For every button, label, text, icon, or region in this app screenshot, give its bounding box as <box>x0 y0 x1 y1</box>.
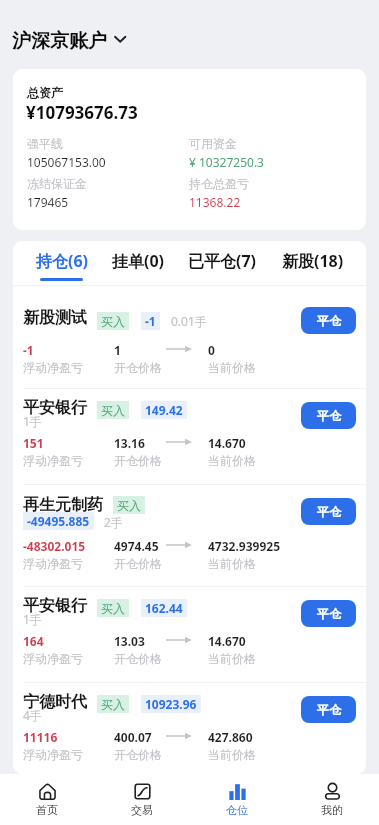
staticText: 宁德时代 <box>23 692 87 712</box>
staticText: 14.670 <box>208 435 246 451</box>
staticText: 4手 <box>23 707 42 723</box>
staticText: 买入 <box>117 498 141 513</box>
button[interactable]: 新股(18) <box>275 241 351 285</box>
button[interactable]: 新股测试 <box>13 286 366 389</box>
staticText: 1手 <box>23 413 42 429</box>
staticText: 开仓价格 <box>114 556 162 571</box>
staticText: 买入 <box>101 314 125 329</box>
staticText: 162.44 <box>145 600 183 616</box>
staticText: 平安银行 <box>23 398 87 418</box>
staticText: 当前价格 <box>208 360 256 375</box>
staticText: 买入 <box>101 601 125 616</box>
staticText: 浮动净盈亏 <box>23 747 83 762</box>
staticText: 11368.22 <box>189 194 241 210</box>
staticText: 1手 <box>23 611 42 627</box>
staticText: 首页 <box>36 803 58 817</box>
staticText: 平仓 <box>317 313 341 328</box>
button[interactable]: 首页 <box>0 774 94 825</box>
staticText: 1 <box>114 342 121 358</box>
staticText: 当前价格 <box>208 747 256 762</box>
staticText: 再生元制药 <box>23 495 103 515</box>
staticText: 当前价格 <box>208 651 256 666</box>
staticText: -1 <box>145 313 156 329</box>
button[interactable]: 平仓 <box>301 402 356 429</box>
staticText: 4974.45 <box>114 538 159 554</box>
staticText: ¥ 10327250.3 <box>189 154 264 170</box>
button[interactable]: 平仓 <box>301 600 356 627</box>
staticText: 151 <box>23 435 44 451</box>
staticText: 浮动净盈亏 <box>23 651 83 666</box>
staticText: 平仓 <box>317 606 341 621</box>
staticText: 买入 <box>101 403 125 418</box>
staticText: 400.07 <box>114 729 152 745</box>
staticText: 总资产 <box>27 85 63 100</box>
staticText: 105067153.00 <box>27 154 106 170</box>
staticText: 179465 <box>27 194 69 210</box>
staticText: 开仓价格 <box>114 360 162 375</box>
staticText: 可用资金 <box>189 136 237 151</box>
staticText: 当前价格 <box>208 453 256 468</box>
staticText: 新股测试 <box>23 308 87 328</box>
staticText: 11116 <box>23 729 58 745</box>
staticText: 149.42 <box>145 402 183 418</box>
staticText: 开仓价格 <box>114 747 162 762</box>
staticText: 平安银行 <box>23 596 87 616</box>
button[interactable]: 再生元制药 <box>13 485 366 587</box>
button[interactable]: 平安银行 <box>13 389 366 485</box>
staticText: 已平仓(7) <box>188 250 257 272</box>
staticText: 新股(18) <box>282 250 344 272</box>
button[interactable]: 挂单(0) <box>100 241 176 285</box>
staticText: 挂单(0) <box>112 250 165 272</box>
staticText: 10923.96 <box>145 696 197 712</box>
staticText: 14.670 <box>208 633 246 649</box>
button[interactable]: 我的 <box>284 774 379 825</box>
staticText: 当前价格 <box>208 556 256 571</box>
staticText: -1 <box>23 342 34 358</box>
staticText: 交易 <box>131 803 153 817</box>
staticText: -49495.885 <box>27 513 90 529</box>
staticText: 164 <box>23 633 44 649</box>
button[interactable]: 平安银行 <box>13 587 366 683</box>
staticText: 冻结保证金 <box>27 176 87 191</box>
staticText: 浮动净盈亏 <box>23 453 83 468</box>
button[interactable]: 宁德时代 <box>13 683 366 774</box>
staticText: 我的 <box>321 803 343 817</box>
staticText: 0.01手 <box>171 313 207 329</box>
staticText: ¥10793676.73 <box>26 101 138 124</box>
staticText: 13.16 <box>114 435 145 451</box>
staticText: 13.03 <box>114 633 145 649</box>
staticText: 427.860 <box>208 729 253 745</box>
staticText: 开仓价格 <box>114 651 162 666</box>
button[interactable]: 已平仓(7) <box>184 241 260 285</box>
staticText: 持仓(6) <box>36 250 89 272</box>
staticText: 仓位 <box>226 803 248 817</box>
button[interactable]: 平仓 <box>301 307 356 334</box>
staticText: 2手 <box>104 514 123 530</box>
staticText: -48302.015 <box>23 538 86 554</box>
staticText: 持仓总盈亏 <box>189 176 249 191</box>
button[interactable]: 仓位 <box>189 774 284 825</box>
staticText: 强平线 <box>27 136 63 151</box>
staticText: 沪深京账户 <box>12 29 107 53</box>
staticText: 平仓 <box>317 408 341 423</box>
staticText: 开仓价格 <box>114 453 162 468</box>
staticText: 浮动净盈亏 <box>23 360 83 375</box>
staticText: 平仓 <box>317 702 341 717</box>
button[interactable]: 沪深京账户 <box>12 29 128 53</box>
staticText: 买入 <box>101 697 125 712</box>
button[interactable]: 持仓(6) <box>24 241 100 285</box>
button[interactable]: 平仓 <box>301 696 356 723</box>
staticText: 浮动净盈亏 <box>23 556 83 571</box>
button[interactable]: 交易 <box>94 774 189 825</box>
staticText: 0 <box>208 342 215 358</box>
button[interactable]: 平仓 <box>301 498 356 525</box>
staticText: 平仓 <box>317 504 341 519</box>
staticText: 4732.939925 <box>208 538 281 554</box>
